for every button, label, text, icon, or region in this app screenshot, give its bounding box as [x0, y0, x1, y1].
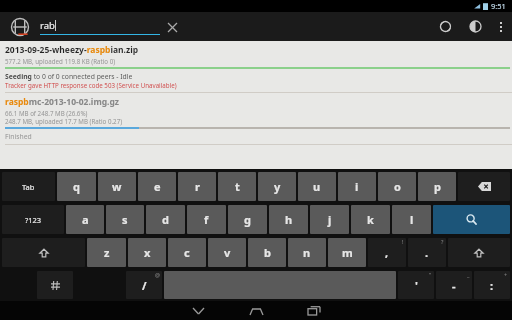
- staticText: ,: [385, 245, 389, 260]
- button[interactable]: v: [208, 238, 246, 267]
- staticText: ?: [441, 238, 444, 245]
- button[interactable]: ,: [368, 238, 406, 267]
- button[interactable]: q: [57, 172, 96, 201]
- staticText: 66.1 MB of 248.7 MB (26.6%): [5, 109, 88, 117]
- button[interactable]: .: [408, 238, 446, 267]
- staticText: l: [410, 212, 414, 227]
- staticText: ": [429, 271, 432, 278]
- button[interactable]: s: [106, 205, 144, 234]
- staticText: j: [328, 212, 332, 227]
- staticText: Tracker gave HTTP response code 503 (Ser…: [5, 81, 177, 89]
- staticText: g: [244, 212, 251, 227]
- staticText: c: [184, 245, 190, 260]
- staticText: i: [355, 179, 359, 194]
- staticText: q: [73, 179, 80, 194]
- button[interactable]: shift: [448, 238, 510, 267]
- button[interactable]: ': [398, 271, 434, 299]
- button[interactable]: a: [66, 205, 104, 234]
- button[interactable]: i: [338, 172, 376, 201]
- button[interactable]: raspbmc-2013-10-02.img.gz: [0, 93, 512, 145]
- button[interactable]: f: [187, 205, 226, 234]
- button[interactable]: b: [248, 238, 286, 267]
- staticText: Tab: [22, 182, 35, 192]
- staticText: x: [144, 245, 151, 260]
- button[interactable]: :: [474, 271, 510, 299]
- button[interactable]: t: [218, 172, 256, 201]
- button[interactable]: r: [178, 172, 216, 201]
- button[interactable]: x: [128, 238, 166, 267]
- button[interactable]: h: [269, 205, 308, 234]
- staticText: !: [402, 238, 404, 245]
- staticText: h: [285, 212, 293, 227]
- button[interactable]: Tab: [2, 172, 55, 201]
- button[interactable]: Clear search: [160, 15, 184, 39]
- staticText: r: [195, 179, 200, 194]
- button[interactable]: -: [436, 271, 472, 299]
- staticText: n: [303, 245, 311, 260]
- staticText: e: [154, 179, 161, 194]
- staticText: 577.2 MB, uploaded 119.8 KB (Ratio 0): [5, 57, 116, 65]
- button[interactable]: grid: [37, 271, 73, 299]
- button[interactable]: e: [138, 172, 176, 201]
- button[interactable]: Recent apps: [285, 301, 343, 320]
- button[interactable]: y: [258, 172, 296, 201]
- staticText: y: [274, 179, 281, 194]
- button[interactable]: z: [87, 238, 126, 267]
- button[interactable]: Home: [227, 301, 285, 320]
- button[interactable]: c: [168, 238, 206, 267]
- staticText: @: [155, 271, 160, 278]
- button[interactable]: k: [351, 205, 390, 234]
- button[interactable]: ?123: [2, 205, 64, 234]
- staticText: rab: [40, 19, 55, 32]
- button[interactable]: Server status: [460, 12, 490, 41]
- button[interactable]: l: [392, 205, 431, 234]
- button[interactable]: Hide keyboard: [169, 301, 227, 320]
- staticText: Seeding to 0 of 0 connected peers - Idle: [5, 72, 133, 81]
- staticText: w: [112, 179, 122, 194]
- staticText: 9:51: [491, 1, 506, 11]
- staticText: t: [235, 179, 240, 194]
- staticText: :: [490, 278, 494, 293]
- staticText: ': [415, 278, 418, 293]
- staticText: d: [162, 212, 169, 227]
- staticText: -: [452, 278, 456, 293]
- button[interactable]: w: [98, 172, 136, 201]
- staticText: ?123: [25, 215, 42, 225]
- button[interactable]: Refresh: [430, 12, 460, 41]
- staticText: raspbmc-2013-10-02.img.gz: [5, 96, 120, 108]
- staticText: z: [104, 245, 110, 260]
- staticText: 2013-09-25-wheezy-raspbian.zip: [5, 44, 139, 56]
- button[interactable]: n: [288, 238, 326, 267]
- staticText: m: [342, 245, 353, 260]
- button[interactable]: p: [418, 172, 456, 201]
- button[interactable]: del: [458, 172, 510, 201]
- button[interactable]: search: [433, 205, 510, 234]
- staticText: k: [367, 212, 374, 227]
- staticText: +: [504, 271, 508, 278]
- button[interactable]: j: [310, 205, 349, 234]
- staticText: Finished: [5, 132, 32, 141]
- staticText: v: [224, 245, 231, 260]
- button[interactable]: 2013-09-25-wheezy-raspbian.zip: [0, 41, 512, 93]
- staticText: s: [122, 212, 128, 227]
- staticText: o: [394, 179, 401, 194]
- button[interactable]: d: [146, 205, 185, 234]
- button[interactable]: o: [378, 172, 416, 201]
- button[interactable]: App, navigate up: [0, 12, 40, 41]
- staticText: /: [142, 278, 147, 293]
- staticText: 248.7 MB, uploaded 17.7 MB (Ratio 0.27): [5, 117, 123, 125]
- staticText: u: [313, 179, 321, 194]
- staticText: b: [264, 245, 271, 260]
- button[interactable]: u: [298, 172, 336, 201]
- staticText: f: [204, 212, 209, 227]
- button[interactable]: m: [328, 238, 366, 267]
- button[interactable]: shift: [2, 238, 85, 267]
- button[interactable]: More options: [490, 12, 512, 41]
- staticText: _: [467, 271, 470, 278]
- button[interactable]: /: [126, 271, 162, 299]
- staticText: p: [434, 179, 441, 194]
- button[interactable]: g: [228, 205, 267, 234]
